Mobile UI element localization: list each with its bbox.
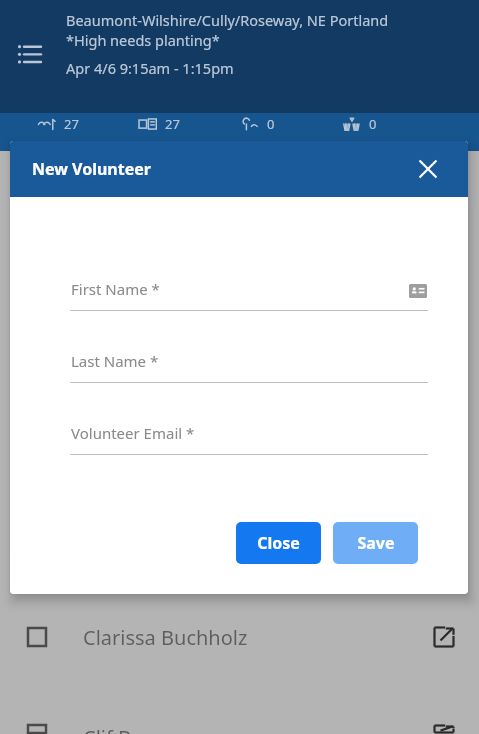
- staticText: Apr 4/6 9:15am - 1:15pm: [66, 58, 234, 78]
- staticText: Beaumont-Wilshire/Cully/Roseway, NE Port…: [66, 10, 389, 30]
- staticText: 27: [64, 115, 79, 133]
- button[interactable]: Select Clarissa Buchholz: [0, 617, 479, 657]
- button[interactable]: Last Name *: [61, 351, 428, 383]
- staticText: First Name *: [71, 279, 160, 299]
- staticText: Save: [357, 532, 395, 554]
- button[interactable]: Close: [236, 522, 321, 564]
- staticText: 0: [267, 115, 275, 133]
- button[interactable]: Pick contact: [408, 281, 428, 301]
- button[interactable]: First Name *: [61, 279, 428, 311]
- staticText: 27: [165, 115, 180, 133]
- button[interactable]: Save: [333, 522, 418, 564]
- button[interactable]: Close: [412, 153, 444, 185]
- button[interactable]: Menu: [13, 38, 47, 72]
- staticText: Clarissa Buchholz: [83, 624, 248, 651]
- button[interactable]: Open Clarissa Buchholz: [433, 626, 455, 648]
- staticText: Last Name *: [71, 351, 159, 371]
- staticText: 0: [369, 115, 377, 133]
- button[interactable]: Open Clif Barnes: [433, 724, 455, 734]
- button[interactable]: Volunteer Email *: [61, 423, 428, 455]
- staticText: Clif Barnes: [83, 724, 184, 734]
- other: Select Clif Barnes: [27, 724, 47, 734]
- staticText: New Volunteer: [32, 158, 151, 180]
- other: Select Clarissa Buchholz: [27, 627, 47, 647]
- staticText: Volunteer Email *: [71, 423, 195, 443]
- staticText: Close: [257, 532, 300, 554]
- button[interactable]: Select Clif Barnes: [0, 724, 479, 734]
- staticText: *High needs planting*: [66, 30, 220, 50]
- button[interactable]: Add volunteer: [392, 397, 452, 457]
